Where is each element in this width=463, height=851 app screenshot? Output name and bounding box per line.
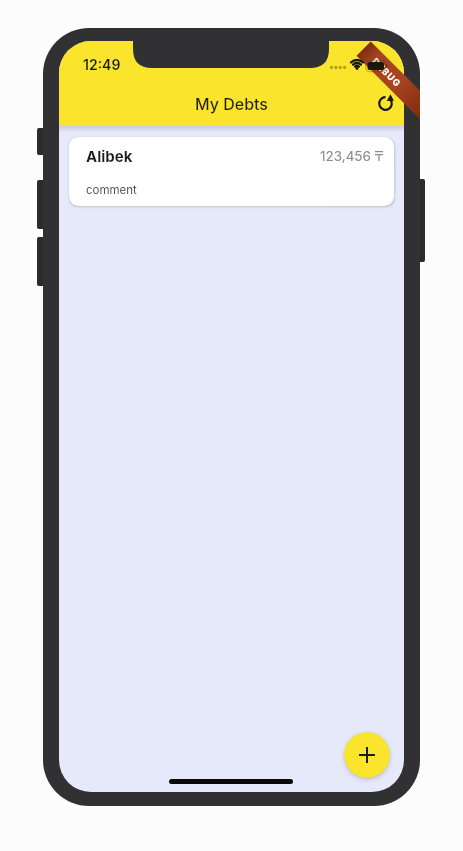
staticText: 12:49 — [83, 56, 121, 73]
button[interactable]: Alibek — [69, 137, 394, 206]
staticText: comment — [86, 183, 137, 197]
staticText: My Debts — [195, 94, 268, 113]
button[interactable] — [378, 96, 393, 111]
button[interactable] — [344, 732, 390, 778]
staticText: 123,456 — [320, 148, 371, 164]
staticText: Alibek — [86, 147, 133, 165]
staticText: DEBUG — [370, 56, 404, 90]
